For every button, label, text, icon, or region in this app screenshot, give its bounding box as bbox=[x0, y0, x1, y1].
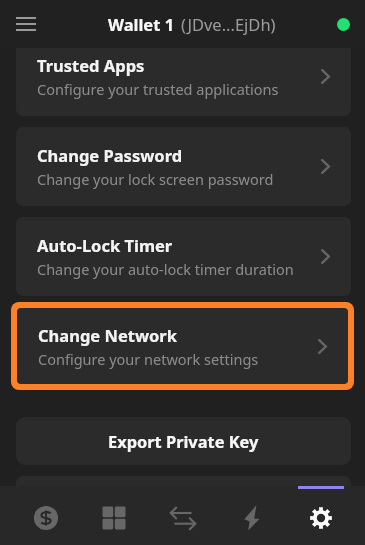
button[interactable]: Export Private Key bbox=[16, 417, 351, 465]
button[interactable]: Activity bbox=[217, 486, 286, 545]
button[interactable]: Change Network bbox=[17, 308, 348, 384]
staticText: Configure your network settings bbox=[38, 349, 259, 369]
button[interactable]: Auto-Lock Timer bbox=[16, 217, 351, 296]
staticText: Change your lock screen password bbox=[37, 169, 274, 189]
button[interactable]: Settings bbox=[286, 486, 355, 545]
staticText: Change Password bbox=[37, 144, 183, 166]
button[interactable]: Change Password bbox=[16, 127, 351, 206]
button[interactable]: Swap bbox=[148, 486, 217, 545]
button[interactable]: Wallet bbox=[12, 486, 80, 545]
staticText: (JDve...EjDh) bbox=[181, 13, 276, 35]
staticText: Change Network bbox=[38, 324, 177, 346]
staticText: Trusted Apps bbox=[37, 54, 145, 76]
staticText: Configure your trusted applications bbox=[37, 79, 279, 99]
staticText: Auto-Lock Timer bbox=[37, 234, 173, 256]
button[interactable]: Connection status bbox=[337, 18, 350, 31]
button[interactable]: Menu bbox=[7, 5, 45, 43]
button[interactable]: Apps bbox=[80, 486, 148, 545]
staticText: Export Private Key bbox=[108, 430, 259, 452]
staticText: Change your auto-lock timer duration bbox=[37, 259, 294, 279]
button[interactable]: Trusted Apps bbox=[16, 48, 351, 116]
staticText: Wallet 1 bbox=[108, 13, 175, 35]
